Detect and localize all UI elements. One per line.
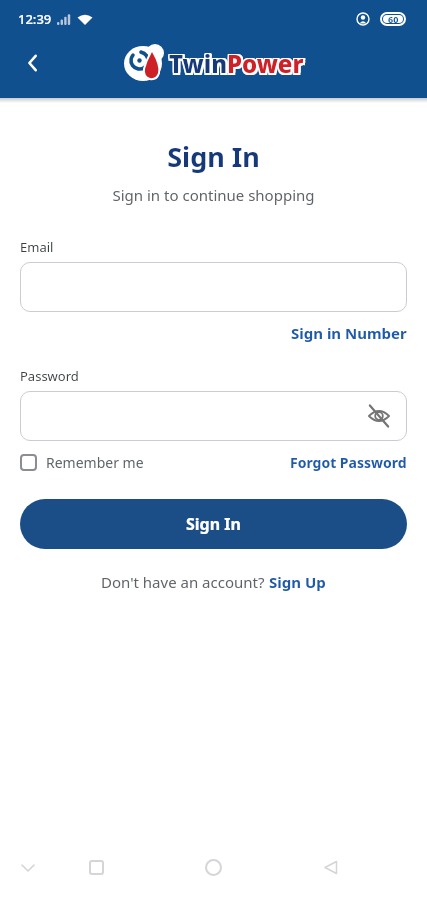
staticText: 12:39 — [18, 10, 52, 28]
button[interactable] — [323, 860, 338, 875]
staticText: Power — [229, 49, 306, 82]
button[interactable]: Forgot Password — [290, 453, 407, 472]
button[interactable] — [89, 860, 104, 875]
button[interactable]: Remember me — [20, 453, 144, 472]
button[interactable] — [20, 391, 407, 441]
staticText: Power — [229, 47, 306, 80]
staticText: Don't have an account? — [101, 572, 269, 592]
staticText: Sign In — [186, 513, 241, 535]
staticText: Twin — [169, 47, 227, 80]
staticText: Power — [226, 46, 303, 79]
staticText: Sign in to continue shopping — [20, 185, 407, 205]
staticText: Twin — [168, 46, 226, 79]
staticText: Email — [20, 238, 54, 256]
staticText: Power — [227, 47, 304, 80]
button[interactable]: Sign in Number — [291, 323, 407, 343]
staticText: Password — [20, 367, 79, 385]
staticText: Twin — [171, 46, 229, 79]
staticText: Power — [226, 49, 303, 82]
staticText: Twin — [169, 46, 227, 79]
staticText: Twin — [169, 49, 227, 82]
button[interactable] — [20, 262, 407, 312]
staticText: Power — [227, 46, 304, 79]
button[interactable]: Sign In — [20, 499, 407, 549]
staticText: Twin — [168, 47, 226, 80]
button[interactable]: Sign Up — [269, 572, 326, 592]
button[interactable] — [18, 48, 48, 78]
staticText: Power — [229, 46, 306, 79]
staticText: Twin — [171, 49, 229, 82]
staticText: Power — [226, 47, 303, 80]
staticText: Twin — [171, 47, 229, 80]
staticText: Sign In — [20, 138, 407, 175]
staticText: Twin — [168, 49, 226, 82]
button[interactable] — [205, 859, 222, 876]
staticText: Power — [227, 49, 304, 82]
staticText: Remember me — [46, 453, 144, 472]
staticText: 60 — [388, 13, 399, 25]
button[interactable] — [22, 864, 34, 872]
